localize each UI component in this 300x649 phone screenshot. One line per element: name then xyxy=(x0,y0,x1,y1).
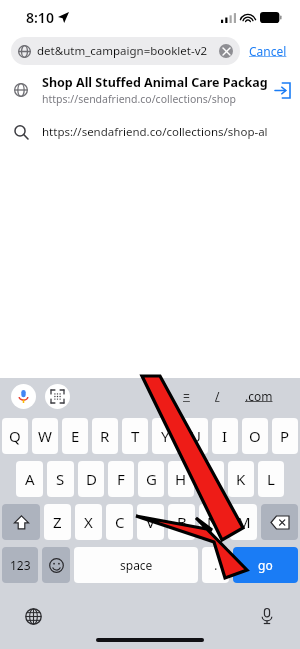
staticText: . xyxy=(214,556,218,574)
button[interactable]: Shop All Stuffed Animal Care Packag xyxy=(0,68,300,112)
staticText: 8:10 xyxy=(26,8,54,27)
button[interactable]: R xyxy=(92,418,118,454)
staticText: O xyxy=(249,426,261,446)
button[interactable]: . xyxy=(202,547,229,583)
button[interactable]: L xyxy=(258,461,284,497)
staticText: 123 xyxy=(10,557,31,573)
staticText: H xyxy=(175,469,187,489)
staticText: L xyxy=(267,469,275,489)
staticText: / xyxy=(215,388,220,404)
button[interactable]: Shift xyxy=(2,504,40,540)
button[interactable]: / xyxy=(204,385,231,407)
staticText: https://sendafriend.co/collections/shop xyxy=(42,92,236,106)
staticText: .com xyxy=(245,388,273,404)
staticText: go xyxy=(258,557,273,573)
button[interactable]: Y xyxy=(152,418,178,454)
button[interactable]: O xyxy=(242,418,268,454)
staticText: F xyxy=(117,469,125,489)
button[interactable]: E xyxy=(62,418,88,454)
button[interactable]: Cancel xyxy=(247,41,289,61)
staticText: Cancel xyxy=(249,43,287,59)
button[interactable]: Scan xyxy=(45,384,70,409)
staticText: E xyxy=(71,426,80,446)
button[interactable]: F xyxy=(108,461,134,497)
staticText: Shop All Stuffed Animal Care Packag xyxy=(42,74,268,91)
button[interactable]: go xyxy=(233,547,298,583)
button[interactable]: M xyxy=(230,504,257,540)
button[interactable]: https://sendafriend.co/collections/shop-… xyxy=(0,112,300,152)
button[interactable]: I xyxy=(212,418,238,454)
button[interactable]: C xyxy=(106,504,133,540)
staticText: T xyxy=(131,426,140,446)
staticText: B xyxy=(177,512,187,532)
button[interactable]: D xyxy=(78,461,104,497)
button[interactable]: T xyxy=(122,418,148,454)
staticText: Y xyxy=(161,426,170,446)
button[interactable]: Clear text xyxy=(219,44,233,58)
button[interactable]: U xyxy=(182,418,208,454)
staticText: D xyxy=(86,469,97,489)
staticText: det&utm_campaign=booklet-v2 xyxy=(37,43,208,59)
button[interactable]: Dictate xyxy=(256,605,278,627)
button[interactable]: K xyxy=(228,461,254,497)
button[interactable]: B xyxy=(168,504,195,540)
staticText: R xyxy=(100,426,110,446)
button[interactable]: W xyxy=(32,418,58,454)
staticText: M xyxy=(237,512,251,532)
staticText: A xyxy=(25,469,35,489)
button[interactable]: X xyxy=(75,504,102,540)
staticText: V xyxy=(146,512,156,532)
button[interactable]: Change keyboard language xyxy=(22,605,44,627)
button[interactable]: space xyxy=(74,547,198,583)
button[interactable]: V xyxy=(137,504,164,540)
staticText: C xyxy=(115,512,125,532)
staticText: P xyxy=(280,426,290,446)
button[interactable]: A xyxy=(16,461,43,497)
button[interactable]: N xyxy=(199,504,226,540)
staticText: X xyxy=(84,512,93,532)
button[interactable]: Q xyxy=(2,418,28,454)
staticText: W xyxy=(38,426,52,446)
staticText: S xyxy=(56,469,65,489)
staticText: Q xyxy=(9,426,21,446)
staticText: I xyxy=(222,426,228,446)
staticText: space xyxy=(120,557,153,573)
staticText: = xyxy=(183,388,190,404)
staticText: G xyxy=(146,469,157,489)
staticText: J xyxy=(209,469,214,489)
button[interactable]: Voice input xyxy=(11,384,36,409)
button[interactable]: Backspace xyxy=(261,504,298,540)
button[interactable]: 123 xyxy=(2,547,38,583)
button[interactable]: H xyxy=(168,461,194,497)
button[interactable]: Z xyxy=(44,504,71,540)
button[interactable]: P xyxy=(272,418,298,454)
button[interactable]: G xyxy=(138,461,164,497)
staticText: K xyxy=(236,469,246,489)
button[interactable]: Open page xyxy=(272,80,292,100)
button[interactable]: det&utm_campaign=booklet-v2 xyxy=(11,37,240,65)
button[interactable]: S xyxy=(47,461,74,497)
button[interactable]: J xyxy=(198,461,224,497)
staticText: U xyxy=(190,426,201,446)
staticText: Z xyxy=(53,512,62,532)
button[interactable]: = xyxy=(172,385,201,407)
button[interactable]: Emoji xyxy=(42,547,70,583)
staticText: N xyxy=(207,512,219,532)
button[interactable]: .com xyxy=(234,385,284,407)
staticText: https://sendafriend.co/collections/shop-… xyxy=(42,124,268,140)
